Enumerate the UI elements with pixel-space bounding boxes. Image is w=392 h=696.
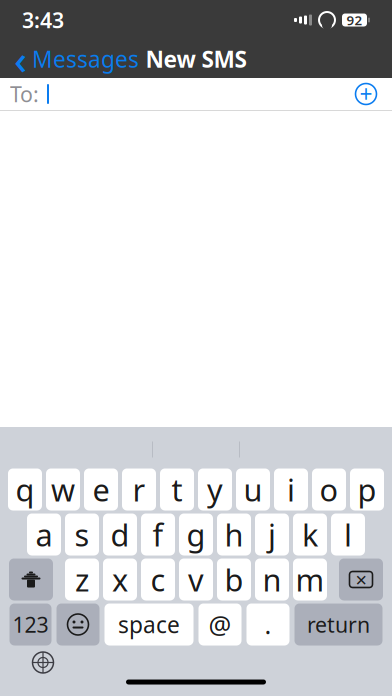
staticText: + — [359, 79, 372, 109]
staticText: u — [243, 469, 262, 510]
staticText: i — [287, 469, 295, 510]
staticText: y — [207, 469, 223, 510]
button[interactable]: Shift — [9, 558, 53, 600]
button[interactable]: Delete — [339, 558, 383, 600]
button[interactable]: 123 — [9, 603, 51, 645]
button[interactable]: o — [312, 468, 346, 510]
button[interactable]: p — [350, 468, 384, 510]
staticText: To: — [10, 80, 39, 108]
staticText: m — [295, 559, 324, 600]
button[interactable]: r — [122, 468, 156, 510]
button[interactable]: u — [236, 468, 270, 510]
staticText: x — [112, 559, 128, 600]
button[interactable]: v — [179, 558, 213, 600]
button[interactable]: s — [65, 513, 99, 555]
staticText: 3:43 — [22, 6, 64, 34]
staticText: r — [132, 469, 145, 510]
staticText: g — [186, 514, 205, 555]
button[interactable]: i — [274, 468, 308, 510]
button[interactable]: w — [46, 468, 80, 510]
button[interactable]: Add contact — [346, 78, 386, 110]
staticText: space — [118, 609, 180, 639]
button[interactable]: m — [293, 558, 327, 600]
button[interactable]: j — [255, 513, 289, 555]
button[interactable]: a — [27, 513, 61, 555]
button[interactable]: x — [103, 558, 137, 600]
staticText: a — [35, 514, 52, 555]
button[interactable]: space — [104, 603, 193, 645]
staticText: z — [75, 559, 89, 600]
staticText: New SMS — [145, 44, 246, 74]
staticText: d — [110, 514, 129, 555]
staticText: h — [224, 514, 243, 555]
staticText: 123 — [12, 610, 48, 639]
staticText: l — [344, 514, 352, 555]
button[interactable]: @ — [198, 603, 241, 645]
staticText: e — [92, 469, 109, 510]
staticText: o — [319, 469, 338, 510]
button[interactable]: y — [198, 468, 232, 510]
staticText: @ — [208, 608, 231, 641]
staticText: 92 — [346, 11, 362, 29]
button[interactable]: Next keyboard — [28, 647, 58, 677]
button[interactable]: k — [293, 513, 327, 555]
button[interactable]: z — [65, 558, 99, 600]
staticText: n — [262, 559, 281, 600]
button[interactable]: b — [217, 558, 251, 600]
staticText: q — [15, 469, 34, 510]
button[interactable]: e — [84, 468, 118, 510]
staticText: f — [152, 514, 163, 555]
button[interactable]: c — [141, 558, 175, 600]
staticText: s — [74, 514, 89, 555]
button[interactable]: g — [179, 513, 213, 555]
staticText: . — [264, 608, 271, 641]
button[interactable]: h — [217, 513, 251, 555]
staticText: j — [268, 514, 276, 555]
button[interactable]: t — [160, 468, 194, 510]
button[interactable]: l — [331, 513, 365, 555]
staticText: w — [51, 469, 75, 510]
staticText: b — [224, 559, 243, 600]
button[interactable]: return — [294, 603, 382, 645]
staticText: k — [302, 514, 318, 555]
staticText: p — [357, 469, 376, 510]
button[interactable]: f — [141, 513, 175, 555]
button[interactable]: q — [8, 468, 42, 510]
staticText: ‹ — [14, 32, 27, 85]
staticText: c — [150, 559, 165, 600]
staticText: × — [355, 566, 366, 593]
button[interactable]: ‹ — [0, 40, 153, 78]
staticText: t — [171, 469, 182, 510]
button[interactable]: d — [103, 513, 137, 555]
button[interactable]: . — [246, 603, 289, 645]
button[interactable]: n — [255, 558, 289, 600]
staticText: v — [188, 559, 204, 600]
button[interactable]: Emoji — [56, 603, 99, 645]
staticText: return — [307, 610, 370, 639]
staticText: Messages — [32, 44, 139, 74]
